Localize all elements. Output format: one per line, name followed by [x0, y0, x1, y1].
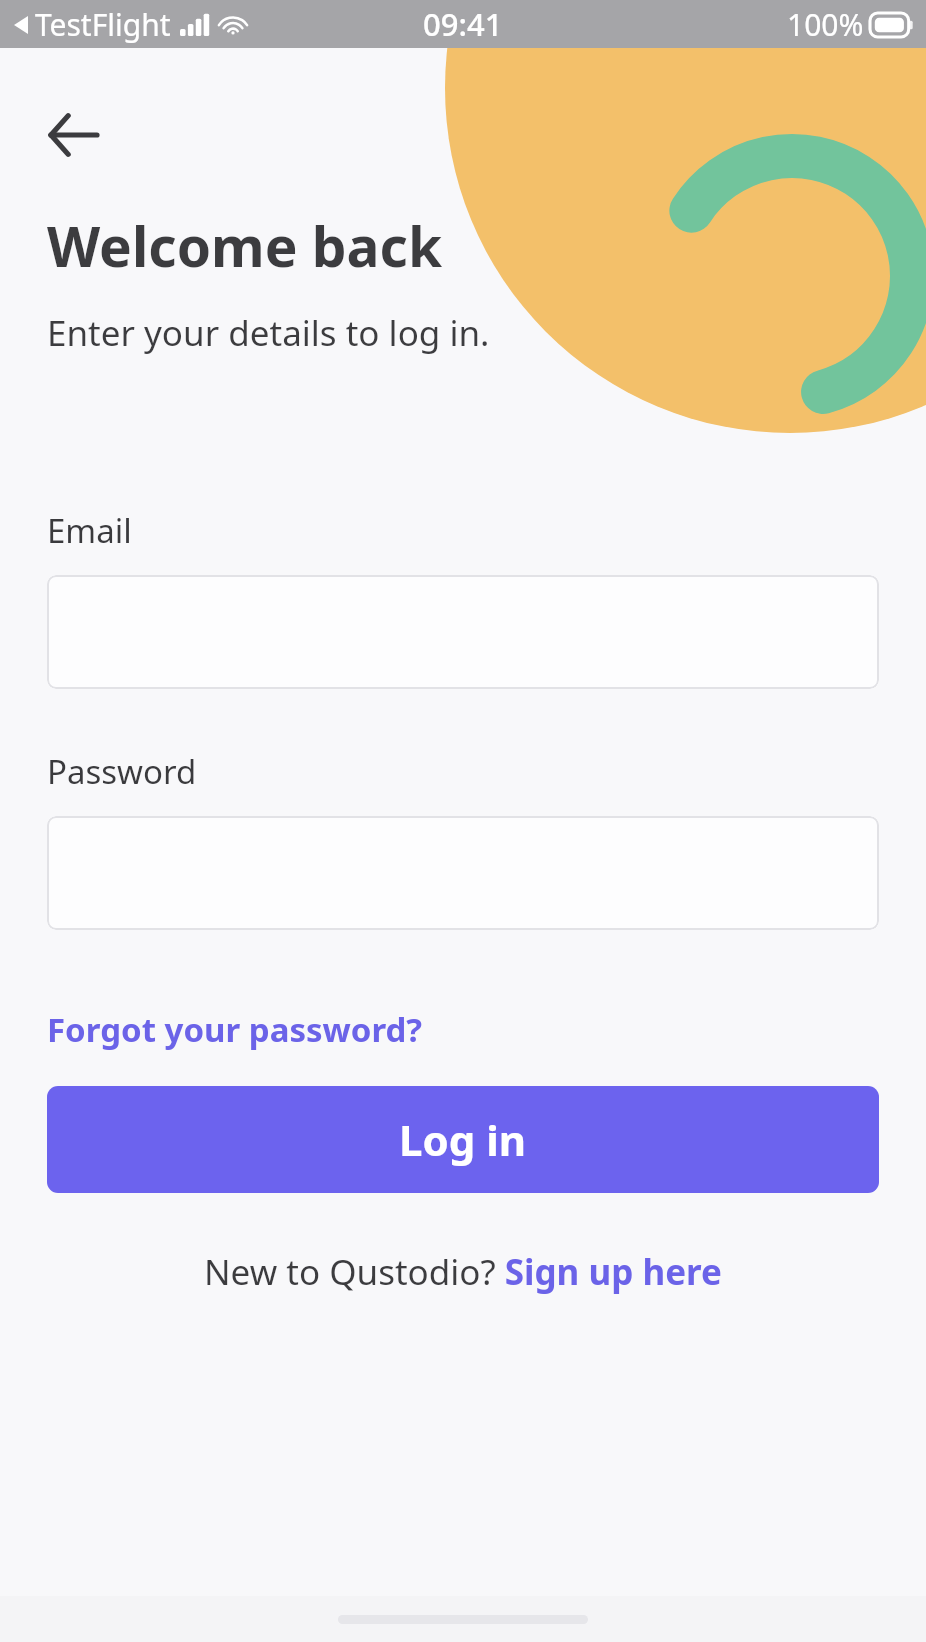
staticText: Log in	[399, 1111, 527, 1168]
button[interactable]: New to Qustodio? Sign up here	[204, 1248, 722, 1296]
staticText: Forgot your password?	[47, 1007, 423, 1052]
button[interactable]: Back	[36, 98, 110, 172]
button[interactable]: Forgot your password?	[47, 1007, 423, 1052]
staticText: TestFlight	[35, 4, 171, 45]
staticText: Enter your details to log in.	[47, 309, 490, 357]
staticText: New to Qustodio? Sign up here	[204, 1248, 722, 1296]
staticText: Welcome back	[47, 208, 443, 283]
button[interactable]: Log in	[47, 1086, 879, 1193]
staticText: 100%	[787, 4, 864, 45]
staticText: Email	[47, 508, 132, 553]
button[interactable]	[47, 816, 879, 930]
staticText: 09:41	[423, 3, 503, 45]
staticText: Password	[47, 749, 197, 794]
button[interactable]	[47, 575, 879, 689]
